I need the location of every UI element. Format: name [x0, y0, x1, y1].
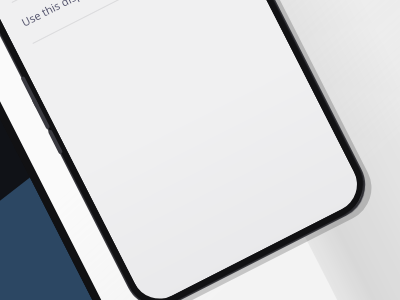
button[interactable]: Navigate up [40, 0, 70, 26]
